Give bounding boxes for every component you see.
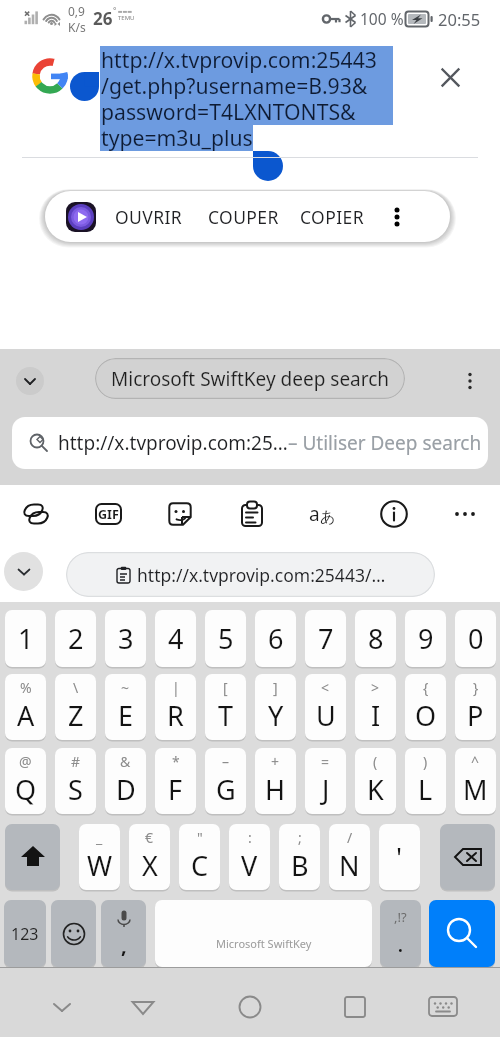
button[interactable]: Changer de clavier <box>413 986 473 1028</box>
button[interactable]: Microsoft SwiftKey deep search <box>95 358 405 399</box>
button[interactable]: Lecteur vidéo <box>66 202 96 232</box>
staticText: { <box>423 678 429 697</box>
button[interactable]: M <box>455 748 496 814</box>
button[interactable]: space <box>155 900 372 967</box>
staticText: : <box>248 828 252 847</box>
button[interactable]: Q <box>5 748 46 814</box>
staticText: – <box>222 752 229 771</box>
staticText: K <box>367 771 384 808</box>
button[interactable]: Accueil <box>220 986 280 1028</box>
button[interactable]: P <box>455 674 496 740</box>
staticText: & <box>120 752 131 771</box>
staticText: ,!? <box>394 908 407 926</box>
button[interactable]: shift <box>5 824 60 890</box>
button[interactable]: S <box>55 748 96 814</box>
staticText: a <box>309 501 320 527</box>
staticText: N <box>339 847 360 884</box>
button[interactable]: Masquer le clavier <box>32 986 92 1028</box>
button[interactable]: Réduire la barre <box>4 552 43 591</box>
button[interactable]: Y <box>255 674 296 740</box>
button[interactable]: W <box>79 824 120 890</box>
button[interactable]: Outil 4 <box>216 485 287 543</box>
button[interactable]: F <box>155 748 196 814</box>
button[interactable]: Outil 5 <box>287 485 358 543</box>
staticText: 100 % <box>360 8 404 29</box>
button[interactable]: J <box>305 748 346 814</box>
button[interactable]: COPIER <box>297 193 367 241</box>
button[interactable]: 8 <box>355 610 396 667</box>
button[interactable]: 123 <box>4 900 46 967</box>
button[interactable]: T <box>205 674 246 740</box>
button[interactable]: B <box>279 824 320 890</box>
staticText: あ <box>320 508 336 527</box>
staticText: | <box>172 678 180 697</box>
button[interactable]: K <box>355 748 396 814</box>
button[interactable]: http://x.tvprovip.com:25… <box>12 417 488 469</box>
button[interactable]: Outil 7 <box>429 485 500 543</box>
staticText: } <box>473 678 479 697</box>
staticText: = <box>321 752 330 771</box>
staticText: GIF <box>98 506 119 523</box>
button[interactable]: R <box>155 674 196 740</box>
button[interactable]: emoji <box>51 900 96 967</box>
button[interactable]: search <box>429 900 495 967</box>
staticText: € <box>145 828 154 847</box>
button[interactable]: G <box>205 748 246 814</box>
button[interactable]: punct <box>380 900 421 967</box>
staticText: O <box>415 697 437 734</box>
button[interactable]: U <box>305 674 346 740</box>
button[interactable]: Z <box>55 674 96 740</box>
button[interactable]: 2 <box>55 610 96 667</box>
button[interactable]: O <box>405 674 446 740</box>
staticText: 6 <box>268 620 284 657</box>
staticText: _ <box>96 828 103 847</box>
button[interactable]: Outil 6 <box>358 485 429 543</box>
button[interactable]: http://x.tvprovip.com:25443/… <box>66 552 435 597</box>
button[interactable]: 6 <box>255 610 296 667</box>
button[interactable]: X <box>129 824 170 890</box>
staticText: K/s <box>68 19 86 35</box>
button[interactable]: 4 <box>155 610 196 667</box>
button[interactable]: I <box>355 674 396 740</box>
button[interactable]: Outil 2 <box>72 485 144 543</box>
button[interactable]: A <box>5 674 46 740</box>
button[interactable]: Retour <box>113 986 173 1028</box>
button[interactable]: Plus d'options <box>381 201 413 233</box>
button[interactable]: N <box>329 824 370 890</box>
button[interactable]: L <box>405 748 446 814</box>
button[interactable]: mic <box>101 900 146 967</box>
button[interactable]: Outil 1 <box>0 485 72 543</box>
button[interactable]: Fermer <box>428 55 472 99</box>
button[interactable]: H <box>255 748 296 814</box>
staticText: J <box>322 771 330 808</box>
button[interactable]: 3 <box>105 610 146 667</box>
staticText: P <box>467 697 484 734</box>
button[interactable]: ' <box>379 824 420 890</box>
staticText: 7 <box>318 620 334 657</box>
button[interactable]: 0 <box>455 610 496 667</box>
button[interactable]: D <box>105 748 146 814</box>
staticText: 4 <box>168 620 184 657</box>
staticText: [ <box>223 678 228 697</box>
staticText: R <box>167 697 184 734</box>
button[interactable]: 9 <box>405 610 446 667</box>
staticText: I <box>371 697 381 734</box>
button[interactable]: E <box>105 674 146 740</box>
staticText: 8 <box>368 620 384 657</box>
button[interactable]: V <box>229 824 270 890</box>
button[interactable]: 5 <box>205 610 246 667</box>
button[interactable]: Applications récentes <box>325 986 385 1028</box>
staticText: http://x.tvprovip.com:25443 <box>101 45 377 74</box>
button[interactable]: C <box>179 824 220 890</box>
button[interactable]: back <box>440 824 495 890</box>
button[interactable]: 7 <box>305 610 346 667</box>
button[interactable]: 1 <box>5 610 46 667</box>
staticText: ^ <box>471 752 480 771</box>
staticText: . <box>398 934 403 957</box>
button[interactable]: Plus <box>456 367 484 395</box>
button[interactable]: Réduire <box>16 367 44 395</box>
button[interactable]: Outil 3 <box>144 485 216 543</box>
button[interactable]: COUPER <box>205 193 282 241</box>
staticText: 0 <box>468 620 484 657</box>
button[interactable]: OUVRIR <box>112 193 186 241</box>
